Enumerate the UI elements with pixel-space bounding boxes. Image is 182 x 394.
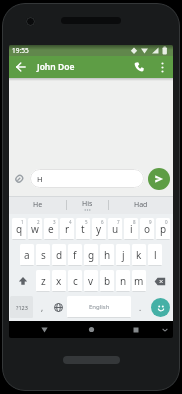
- staticText: k: [136, 248, 142, 262]
- button[interactable]: n: [116, 270, 130, 292]
- staticText: 19:55: [12, 46, 29, 55]
- staticText: English: [89, 303, 110, 311]
- button[interactable]: [130, 324, 142, 335]
- button[interactable]: v: [84, 270, 98, 292]
- button[interactable]: l: [148, 244, 162, 266]
- staticText: e: [48, 222, 54, 236]
- button[interactable]: a: [20, 244, 34, 266]
- staticText: g: [88, 248, 95, 262]
- staticText: p: [160, 222, 167, 236]
- button[interactable]: [148, 168, 170, 190]
- button[interactable]: His: [67, 196, 108, 214]
- staticText: x: [56, 274, 62, 288]
- staticText: He: [33, 200, 43, 210]
- button[interactable]: .: [133, 296, 147, 318]
- staticText: l: [154, 248, 157, 262]
- staticText: r: [65, 222, 70, 236]
- staticText: v: [88, 274, 94, 288]
- staticText: f: [73, 248, 77, 262]
- staticText: 8: [133, 219, 136, 225]
- button[interactable]: r: [60, 218, 74, 240]
- staticText: s: [41, 248, 46, 262]
- staticText: y: [96, 222, 102, 236]
- staticText: i: [130, 222, 133, 236]
- staticText: j: [122, 248, 125, 262]
- button[interactable]: i: [124, 218, 138, 240]
- button[interactable]: [9, 56, 33, 78]
- staticText: 3: [53, 219, 56, 225]
- staticText: w: [31, 222, 39, 236]
- staticText: John Doe: [37, 61, 75, 73]
- staticText: ?123: [16, 304, 28, 311]
- button[interactable]: [151, 298, 170, 317]
- button[interactable]: e: [44, 218, 58, 240]
- button[interactable]: ,: [35, 296, 49, 318]
- button[interactable]: u: [108, 218, 122, 240]
- staticText: ,: [41, 302, 44, 313]
- button[interactable]: [159, 324, 171, 335]
- staticText: 5: [85, 219, 88, 225]
- staticText: 1: [21, 219, 24, 225]
- button[interactable]: [11, 270, 34, 292]
- staticText: H: [37, 174, 43, 184]
- button[interactable]: w: [28, 218, 42, 240]
- button[interactable]: [154, 56, 170, 78]
- button[interactable]: H: [30, 169, 144, 188]
- button[interactable]: [85, 324, 97, 335]
- staticText: .: [139, 302, 142, 313]
- staticText: Had: [134, 200, 148, 210]
- staticText: u: [112, 222, 119, 236]
- button[interactable]: x: [52, 270, 66, 292]
- staticText: h: [104, 248, 111, 262]
- button[interactable]: m: [132, 270, 146, 292]
- staticText: o: [144, 222, 151, 236]
- button[interactable]: z: [36, 270, 50, 292]
- staticText: 7: [117, 219, 120, 225]
- staticText: n: [120, 274, 127, 288]
- button[interactable]: [51, 296, 65, 318]
- button[interactable]: c: [68, 270, 82, 292]
- button[interactable]: y: [92, 218, 106, 240]
- staticText: c: [73, 274, 78, 288]
- staticText: 2: [37, 219, 40, 225]
- button[interactable]: h: [100, 244, 114, 266]
- button[interactable]: g: [84, 244, 98, 266]
- staticText: 4: [69, 219, 72, 225]
- button[interactable]: o: [140, 218, 154, 240]
- button[interactable]: Had: [109, 196, 173, 214]
- button[interactable]: f: [68, 244, 82, 266]
- staticText: t: [81, 222, 85, 236]
- button[interactable]: d: [52, 244, 66, 266]
- staticText: z: [41, 274, 46, 288]
- button[interactable]: p: [156, 218, 170, 240]
- staticText: 0: [165, 219, 168, 225]
- staticText: b: [104, 274, 111, 288]
- staticText: 6: [101, 219, 104, 225]
- button[interactable]: k: [132, 244, 146, 266]
- button[interactable]: [12, 171, 27, 186]
- button[interactable]: j: [116, 244, 130, 266]
- button[interactable]: English: [67, 296, 131, 318]
- staticText: m: [134, 274, 144, 288]
- staticText: His: [82, 199, 93, 209]
- staticText: d: [56, 248, 63, 262]
- staticText: q: [16, 222, 23, 236]
- staticText: 9: [149, 219, 152, 225]
- button[interactable]: ?123: [10, 296, 33, 318]
- button[interactable]: q: [12, 218, 26, 240]
- button[interactable]: b: [100, 270, 114, 292]
- button[interactable]: He: [9, 196, 66, 214]
- staticText: a: [24, 248, 30, 262]
- button[interactable]: [128, 56, 150, 78]
- button[interactable]: s: [36, 244, 50, 266]
- button[interactable]: t: [76, 218, 90, 240]
- button[interactable]: [148, 270, 171, 292]
- button[interactable]: [38, 324, 50, 335]
